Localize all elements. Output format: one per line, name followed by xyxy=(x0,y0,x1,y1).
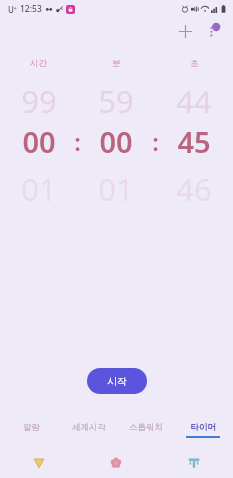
button[interactable]: Back xyxy=(0,457,77,469)
other: Timer duration 00:00:45 xyxy=(6,122,227,161)
staticText: 세계시각 xyxy=(72,422,106,433)
staticText: 59 xyxy=(98,80,134,114)
staticText: 초 xyxy=(190,58,199,69)
staticText: 타이머 xyxy=(190,422,216,433)
button[interactable]: 00 xyxy=(6,122,71,161)
button[interactable]: 45 xyxy=(161,122,227,161)
button[interactable]: Add timer xyxy=(171,18,199,44)
staticText: U⁺ xyxy=(8,4,17,15)
button[interactable]: 타이머 xyxy=(174,420,231,440)
staticText: 45 xyxy=(177,122,211,161)
button[interactable]: Recent apps xyxy=(155,457,233,469)
staticText: : xyxy=(152,125,159,158)
staticText: 00 xyxy=(22,122,56,161)
button[interactable]: 스톱워치 xyxy=(117,420,174,438)
button[interactable]: Home xyxy=(77,457,155,469)
staticText: : xyxy=(74,125,81,158)
staticText: 44 xyxy=(176,80,212,114)
staticText: 시간 xyxy=(30,58,47,69)
staticText: 00 xyxy=(99,122,133,161)
button[interactable]: More options xyxy=(199,18,227,44)
staticText: 99 xyxy=(21,80,57,114)
staticText: 12:53 xyxy=(20,3,42,15)
staticText: 스톱워치 xyxy=(129,422,163,433)
button[interactable]: 00 xyxy=(83,122,149,161)
staticText: 46 xyxy=(176,168,212,202)
staticText: 분 xyxy=(112,58,121,69)
staticText: 알람 xyxy=(23,422,40,433)
button[interactable]: 시작 xyxy=(87,368,147,394)
staticText: 01 xyxy=(98,168,134,202)
button[interactable]: 세계시각 xyxy=(60,420,117,438)
button[interactable]: 알람 xyxy=(2,420,60,438)
staticText: 01 xyxy=(21,168,57,202)
staticText: 시작 xyxy=(107,375,127,388)
